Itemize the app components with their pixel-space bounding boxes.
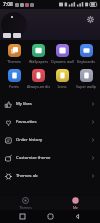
button[interactable]: Themes <box>2 43 26 65</box>
button[interactable]: Back <box>73 212 82 221</box>
button[interactable]: Super wallp <box>74 68 98 90</box>
button[interactable]: Themes <box>0 196 50 210</box>
staticText: Always-on dis <box>27 84 50 89</box>
button[interactable]: Themes ab <box>0 167 100 185</box>
button[interactable]: Customize theme <box>0 149 100 167</box>
staticText: Super wallp <box>76 84 96 89</box>
button[interactable]: Always-on dis <box>26 68 50 90</box>
button[interactable]: Recent apps <box>18 212 27 221</box>
staticText: Wallpapers <box>29 59 48 64</box>
staticText: Themes <box>7 59 21 64</box>
staticText: 7:08 <box>3 1 13 8</box>
staticText: Me <box>73 205 78 210</box>
button[interactable]: Favourites <box>0 113 100 131</box>
staticText: Keyboards <box>77 59 95 64</box>
button[interactable]: Order history <box>0 131 100 149</box>
button[interactable]: Featured theme <box>1 12 27 38</box>
staticText: Themes <box>19 205 32 210</box>
staticText: Customize theme <box>16 155 51 161</box>
button[interactable]: Theme preview <box>13 33 21 38</box>
button[interactable]: Fonts <box>2 68 26 90</box>
button[interactable]: Keyboards <box>74 43 98 65</box>
staticText: Dynamic wall <box>51 59 74 64</box>
staticText: Icons <box>57 84 67 89</box>
button[interactable]: Icons <box>50 68 74 90</box>
staticText: Favourites <box>16 119 37 125</box>
button[interactable]: Settings <box>86 15 95 24</box>
button[interactable]: Wallpapers <box>26 43 50 65</box>
button[interactable]: Theme preview <box>3 33 11 38</box>
staticText: Themes ab <box>16 173 38 179</box>
staticText: Fonts <box>9 84 19 89</box>
button[interactable]: Home <box>46 212 55 221</box>
staticText: Order history <box>16 137 43 143</box>
button[interactable]: Dynamic wall <box>50 43 74 65</box>
button[interactable]: My likes <box>0 95 100 113</box>
button[interactable]: Me <box>50 196 100 210</box>
staticText: My likes <box>16 101 32 107</box>
